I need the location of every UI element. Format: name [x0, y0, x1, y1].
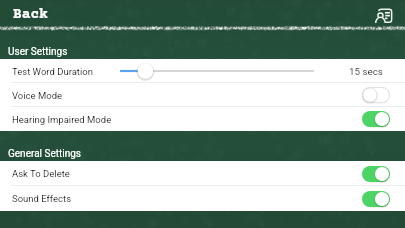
button[interactable]: Ask To Delete: [0, 161, 405, 186]
button[interactable]: [362, 111, 390, 127]
staticText: Hearing Impaired Mode: [12, 114, 112, 125]
button[interactable]: [362, 166, 390, 182]
button[interactable]: Test Word Duration: [0, 59, 405, 83]
button[interactable]: [362, 191, 390, 207]
button[interactable]: Hearing Impaired Mode: [0, 107, 405, 131]
staticText: User Settings: [8, 46, 68, 58]
staticText: General Settings: [8, 148, 81, 160]
button[interactable]: Account: [375, 9, 395, 26]
staticText: Test Word Duration: [12, 66, 93, 77]
staticText: Back: [13, 7, 48, 23]
button[interactable]: Back: [9, 5, 52, 25]
staticText: 15 secs: [349, 66, 383, 77]
button[interactable]: Sound Effects: [0, 186, 405, 211]
button[interactable]: [362, 87, 390, 103]
button[interactable]: Voice Mode: [0, 83, 405, 107]
staticText: Sound Effects: [12, 193, 72, 204]
staticText: Voice Mode: [12, 90, 63, 101]
staticText: Ask To Delete: [12, 168, 70, 179]
